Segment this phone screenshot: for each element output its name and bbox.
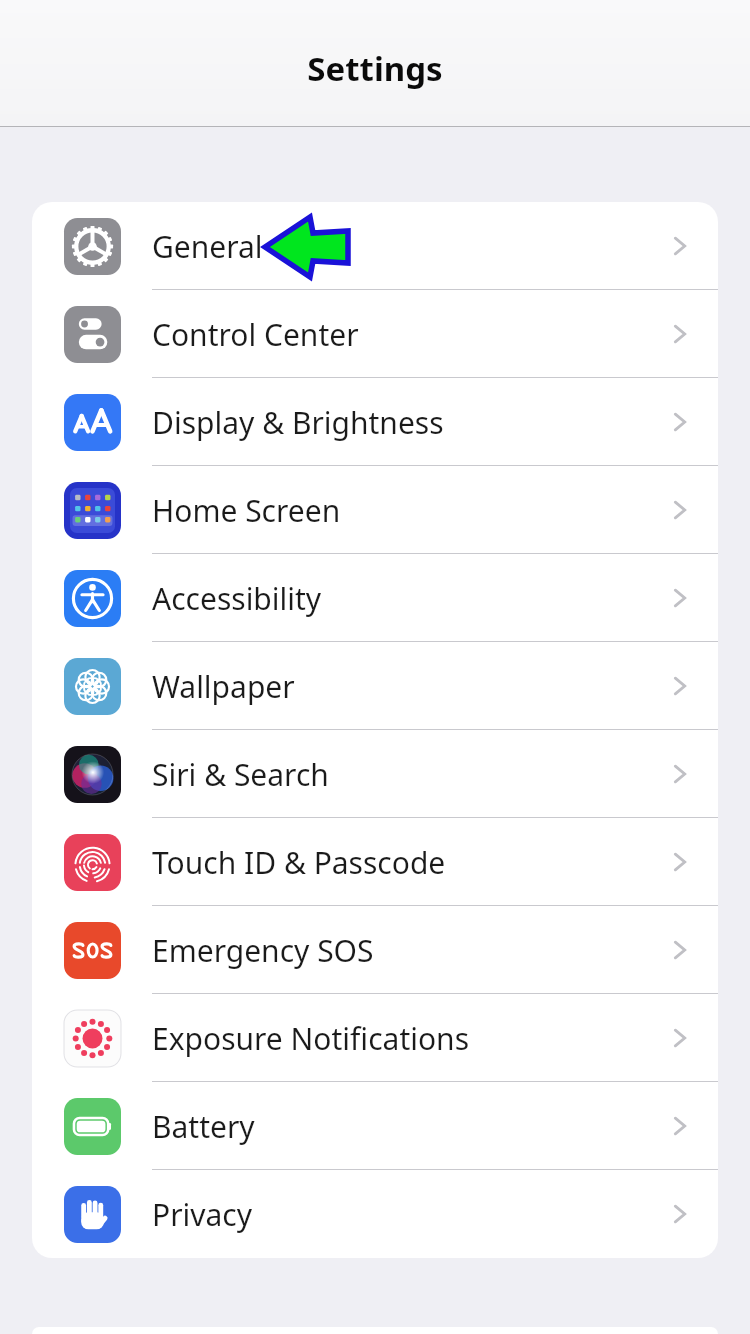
button[interactable]: Display & Brightness xyxy=(32,378,718,466)
staticText: Home Screen xyxy=(152,490,341,531)
staticText: General xyxy=(152,226,263,267)
button[interactable]: General xyxy=(32,202,718,290)
staticText: Battery xyxy=(152,1106,255,1147)
button[interactable]: Battery xyxy=(32,1082,718,1170)
button[interactable]: Wallpaper xyxy=(32,642,718,730)
button[interactable]: Siri & Search xyxy=(32,730,718,818)
staticText: Accessibility xyxy=(152,578,322,619)
button[interactable]: Privacy xyxy=(32,1170,718,1258)
button[interactable]: Accessibility xyxy=(32,554,718,642)
button[interactable]: Exposure Notifications xyxy=(32,994,718,1082)
button[interactable]: Control Center xyxy=(32,290,718,378)
button[interactable]: Touch ID & Passcode xyxy=(32,818,718,906)
staticText: Control Center xyxy=(152,314,359,355)
staticText: Exposure Notifications xyxy=(152,1018,470,1059)
staticText: Touch ID & Passcode xyxy=(152,842,446,883)
button[interactable]: Home Screen xyxy=(32,466,718,554)
staticText: Emergency SOS xyxy=(152,930,374,971)
button[interactable]: Emergency SOS xyxy=(32,906,718,994)
staticText: Privacy xyxy=(152,1194,253,1235)
staticText: Settings xyxy=(307,46,443,91)
other: Annotation arrow pointing to General xyxy=(0,0,750,1334)
staticText: Siri & Search xyxy=(152,754,329,795)
staticText: Display & Brightness xyxy=(152,402,444,443)
staticText: Wallpaper xyxy=(152,666,295,707)
